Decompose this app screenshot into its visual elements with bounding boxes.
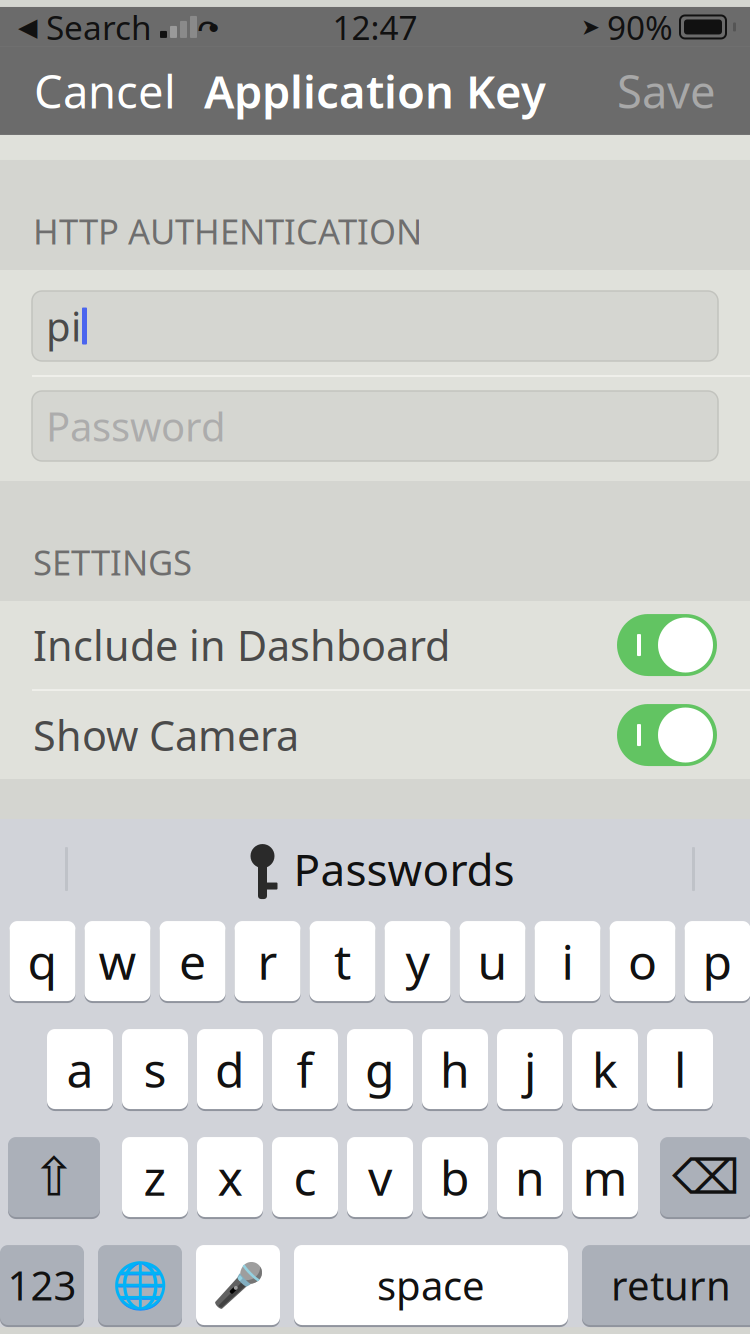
staticText: Search [37,5,152,49]
button[interactable]: f [272,1027,338,1111]
button[interactable]: p [684,919,750,1003]
staticText: s [143,1037,166,1101]
staticText: g [365,1037,395,1101]
staticText: ⇧ [31,1147,76,1207]
staticText: i [561,929,573,993]
button[interactable]: s [122,1027,188,1111]
button[interactable]: Next keyboard [98,1243,182,1327]
staticText: ⌫ [672,1150,740,1204]
staticText: Passwords [293,840,514,898]
staticText: 🎤 [211,1261,264,1309]
staticText: q [27,929,57,993]
button[interactable]: Cancel [22,47,188,135]
staticText: k [592,1037,618,1101]
staticText: v [368,1145,392,1209]
button[interactable]: space [294,1243,568,1327]
staticText: z [143,1145,166,1209]
button[interactable]: b [422,1135,488,1219]
staticText: Save [617,61,716,121]
button[interactable]: m [572,1135,638,1219]
staticText: l [674,1037,686,1101]
staticText: ➤ [581,14,600,40]
staticText: u [477,929,507,993]
staticText: ● [209,21,218,33]
button[interactable]: Save [605,47,728,135]
button[interactable]: o [609,919,675,1003]
button[interactable]: Passwords [219,828,540,910]
staticText: Cancel [34,61,176,121]
staticText: HTTP AUTHENTICATION [33,208,422,254]
button[interactable]: z [122,1135,188,1219]
staticText: y [405,929,429,993]
button[interactable]: i [534,919,600,1003]
staticText: SETTINGS [33,539,192,585]
staticText: r [257,929,277,993]
staticText: w [98,929,136,993]
button[interactable]: Dictation [196,1243,280,1327]
staticText: f [296,1037,313,1101]
button[interactable]: Delete [660,1135,750,1219]
button[interactable]: t [309,919,375,1003]
staticText: m [582,1145,627,1209]
staticText: return [611,1258,731,1312]
staticText: pi [46,299,81,352]
button[interactable]: g [347,1027,413,1111]
staticText: Include in Dashboard [33,618,450,672]
button[interactable]: y [384,919,450,1003]
button[interactable]: w [84,919,150,1003]
staticText: Application Key [204,61,546,121]
staticText: e [179,929,206,993]
button[interactable]: a [47,1027,113,1111]
button[interactable]: Include in Dashboard [0,601,750,689]
staticText: x [217,1145,242,1209]
button[interactable]: x [197,1135,263,1219]
button[interactable]: n [497,1135,563,1219]
button[interactable]: j [497,1027,563,1111]
staticText: j [524,1037,536,1101]
staticText: n [515,1145,545,1209]
staticText: 123 [7,1258,76,1312]
button[interactable]: Numbers [0,1243,84,1327]
button[interactable]: v [347,1135,413,1219]
button[interactable]: r [234,919,300,1003]
button[interactable]: return [582,1243,750,1327]
button[interactable]: Shift [8,1135,100,1219]
staticText: ᴖ [196,4,218,50]
staticText: Show Camera [33,708,299,762]
staticText: 12:47 [332,5,417,49]
staticText: 90% [607,5,673,49]
button[interactable]: c [272,1135,338,1219]
staticText: Password [46,399,226,452]
staticText: d [215,1037,245,1101]
staticText: p [702,929,732,993]
button[interactable]: l [647,1027,713,1111]
staticText: o [628,929,657,993]
staticText: a [66,1037,93,1101]
button[interactable]: Show Camera [0,691,750,779]
staticText: c [293,1145,316,1209]
staticText: b [440,1145,470,1209]
staticText: space [377,1258,485,1312]
staticText: h [440,1037,470,1101]
button[interactable]: e [159,919,225,1003]
staticText: ◀ [18,13,37,41]
button[interactable]: u [459,919,525,1003]
button[interactable]: k [572,1027,638,1111]
button[interactable]: q [9,919,75,1003]
staticText: t [334,929,351,993]
button[interactable]: h [422,1027,488,1111]
staticText: 🌐 [112,1259,168,1311]
button[interactable]: d [197,1027,263,1111]
